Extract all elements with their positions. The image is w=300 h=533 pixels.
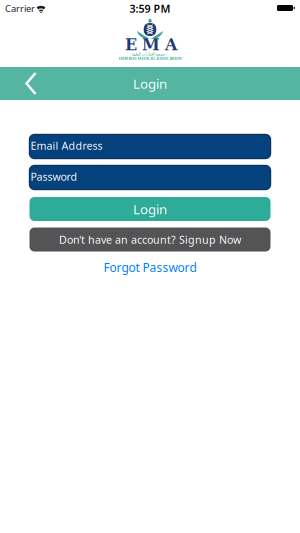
button[interactable]: Don't have an account? Signup Now (29, 227, 270, 251)
staticText: جمعية الإمارات الطبية (131, 52, 164, 56)
staticText: 3:59 PM (129, 1, 170, 16)
staticText: EMIRATES MEDICAL ASSOCIATION (118, 56, 181, 61)
staticText: Password (30, 169, 77, 184)
staticText: Forgot Password (103, 259, 196, 275)
staticText: Login (133, 75, 167, 92)
staticText: Email Address (30, 138, 102, 153)
button[interactable]: Email Address (29, 134, 270, 158)
staticText: Don't have an account? Signup Now (59, 232, 241, 247)
button[interactable]: Login (29, 197, 270, 221)
button[interactable]: Back (0, 67, 37, 99)
staticText: Login (133, 200, 167, 218)
staticText: Carrier (5, 2, 35, 15)
button[interactable]: Forgot Password (95, 255, 204, 279)
button[interactable]: Password (29, 165, 270, 189)
staticText: EMA (125, 35, 177, 54)
